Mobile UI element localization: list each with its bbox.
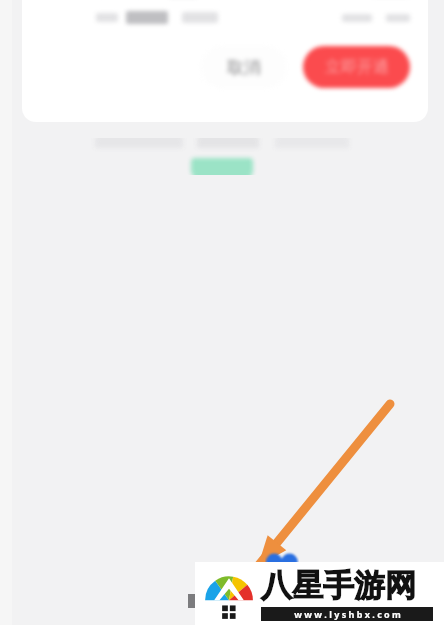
button[interactable]: App icon [265, 551, 299, 566]
button[interactable]: 取消 [201, 46, 287, 88]
staticText: 立即开通 [325, 57, 389, 77]
button[interactable] [191, 158, 253, 175]
staticText: 取消 [227, 57, 261, 78]
button[interactable]: 立即开通 [303, 46, 410, 88]
other: Annotation arrow [0, 0, 444, 625]
staticText: 八星手游网 [261, 566, 416, 605]
staticText: w w w . l y s h b x . c o m [294, 608, 401, 620]
